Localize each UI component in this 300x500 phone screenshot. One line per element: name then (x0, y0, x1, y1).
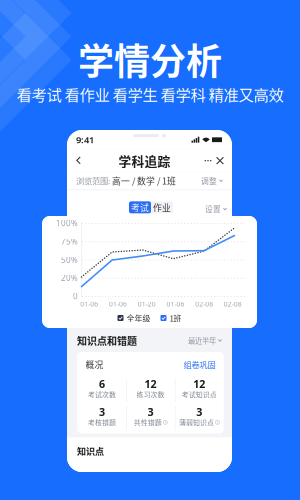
staticText: 薄弱知识点 (179, 417, 214, 427)
button[interactable]: Back (72, 152, 86, 169)
button[interactable]: 作业 (151, 201, 173, 213)
staticText: 3 (99, 405, 105, 419)
staticText: 20% (61, 273, 78, 283)
staticText: 50% (61, 254, 78, 265)
staticText: 组卷巩固 (184, 358, 216, 370)
staticText: 100% (56, 218, 78, 228)
staticText: 考试次数 (88, 389, 116, 399)
staticText: 学科追踪 (118, 151, 170, 170)
staticText: 考试 (131, 201, 149, 214)
staticText: 练习次数 (137, 389, 165, 399)
staticText: 02-08 (224, 300, 242, 308)
staticText: 全年级 (126, 312, 150, 324)
staticText: 考试知识点 (182, 389, 217, 399)
staticText: 知识点和错题 (77, 333, 137, 348)
button[interactable]: 考试 (129, 201, 151, 213)
staticText: 6 (99, 377, 105, 391)
staticText: 3 (196, 405, 202, 419)
button[interactable]: 设置 (205, 203, 227, 215)
staticText: 设置 (205, 203, 221, 215)
staticText: 01-06 (109, 300, 127, 308)
staticText: 02-08 (195, 300, 213, 308)
staticText: 共性错题 (134, 417, 162, 427)
staticText: 75% (61, 236, 78, 247)
staticText: 01-06 (166, 300, 184, 308)
staticText: 概况 (86, 358, 104, 371)
staticText: 知识点 (77, 444, 104, 457)
staticText: 01-06 (80, 300, 98, 308)
staticText: 最近半年 (188, 335, 216, 346)
staticText: 3 (148, 405, 154, 419)
staticText: 考核错题 (88, 417, 116, 427)
button[interactable]: 组卷巩固 (184, 358, 216, 370)
staticText: 0 (73, 291, 78, 301)
staticText: 调整 (201, 175, 217, 186)
button[interactable]: 最近半年 (188, 335, 222, 346)
staticText: 1班 (169, 312, 181, 324)
staticText: 9:41 (76, 133, 94, 146)
staticText: 看考试 看作业 看学生 看学科 精准又高效 (16, 83, 283, 105)
button[interactable]: 调整 (201, 175, 223, 186)
staticText: 01-20 (138, 300, 156, 308)
staticText: 浏览范围: (76, 175, 110, 187)
staticText: 作业 (153, 201, 171, 214)
staticText: 高一 / 数学 / 1班 (110, 174, 176, 187)
staticText: 12 (193, 377, 205, 391)
staticText: 学情分析 (78, 33, 222, 85)
staticText: 12 (145, 377, 157, 391)
button[interactable]: More (203, 156, 213, 166)
button[interactable]: Close (213, 154, 227, 168)
